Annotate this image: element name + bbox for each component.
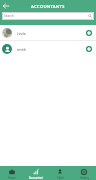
staticText: ACCOUNTANTS — [31, 3, 65, 9]
staticText: Client — [57, 176, 64, 180]
button[interactable]: Add — [84, 44, 94, 54]
button[interactable]: Search — [2, 12, 94, 20]
button[interactable]: Accountant — [24, 169, 48, 180]
button[interactable]: Back — [0, 0, 12, 12]
button[interactable]: Client — [48, 169, 72, 180]
staticText: Setting — [80, 176, 89, 180]
button[interactable]: smith — [0, 41, 96, 56]
button[interactable]: Setting — [72, 169, 96, 180]
button[interactable]: Add — [84, 28, 94, 38]
staticText: smith — [17, 47, 26, 51]
button[interactable]: Linda — [0, 25, 96, 40]
staticText: Accountant — [29, 176, 43, 180]
staticText: Search — [4, 14, 15, 18]
staticText: Linda — [17, 31, 26, 35]
staticText: Home — [8, 176, 16, 180]
button[interactable]: Home — [0, 169, 24, 180]
